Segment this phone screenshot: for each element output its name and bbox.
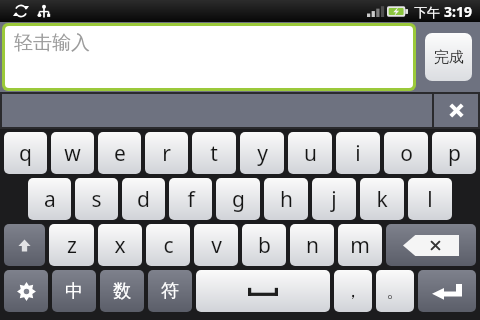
button[interactable]: Backspace — [386, 224, 476, 266]
button[interactable]: Shift — [4, 224, 45, 266]
staticText: g — [232, 185, 245, 214]
staticText: c — [163, 231, 174, 260]
button[interactable]: a — [28, 178, 71, 220]
staticText: 下午 — [414, 4, 440, 20]
staticText: 符 — [161, 280, 179, 303]
button[interactable]: ， — [334, 270, 372, 312]
staticText: t — [210, 139, 218, 168]
staticText: v — [211, 231, 222, 260]
button[interactable]: k — [360, 178, 404, 220]
button[interactable]: b — [242, 224, 286, 266]
staticText: x — [114, 231, 126, 260]
button[interactable]: Settings — [4, 270, 48, 312]
button[interactable]: Enter — [418, 270, 476, 312]
button[interactable]: u — [288, 132, 332, 174]
staticText: n — [306, 231, 319, 260]
button[interactable]: h — [264, 178, 308, 220]
button[interactable]: q — [4, 132, 47, 174]
staticText: e — [114, 139, 126, 168]
button[interactable]: d — [122, 178, 165, 220]
staticText: i — [355, 139, 361, 168]
staticText: q — [19, 139, 32, 168]
button[interactable]: o — [384, 132, 428, 174]
staticText: k — [376, 185, 388, 214]
button[interactable]: 轻击输入 — [5, 26, 413, 88]
staticText: p — [448, 139, 461, 168]
button[interactable]: p — [432, 132, 476, 174]
button[interactable]: Space — [196, 270, 330, 312]
button[interactable]: v — [194, 224, 238, 266]
button[interactable]: 完成 — [425, 33, 472, 81]
button[interactable]: n — [290, 224, 334, 266]
staticText: a — [44, 185, 56, 214]
staticText: j — [331, 185, 337, 214]
button[interactable]: z — [49, 224, 94, 266]
button[interactable]: 中 — [52, 270, 96, 312]
button[interactable]: y — [240, 132, 284, 174]
button[interactable]: s — [75, 178, 118, 220]
button[interactable]: l — [408, 178, 452, 220]
button[interactable]: i — [336, 132, 380, 174]
button[interactable]: m — [338, 224, 382, 266]
button[interactable]: f — [169, 178, 212, 220]
staticText: u — [304, 139, 317, 168]
staticText: l — [427, 185, 433, 214]
button[interactable]: 符 — [148, 270, 192, 312]
staticText: r — [162, 139, 171, 168]
staticText: y — [257, 139, 268, 168]
button[interactable]: 。 — [376, 270, 414, 312]
staticText: 3:19 — [444, 2, 472, 21]
staticText: f — [187, 185, 195, 214]
staticText: w — [64, 139, 81, 168]
button[interactable]: w — [51, 132, 94, 174]
button[interactable]: Close keyboard — [434, 94, 478, 127]
button[interactable]: g — [216, 178, 260, 220]
staticText: 。 — [386, 280, 404, 303]
staticText: b — [258, 231, 271, 260]
staticText: o — [400, 139, 413, 168]
button[interactable]: x — [98, 224, 142, 266]
button[interactable]: c — [146, 224, 190, 266]
staticText: 完成 — [434, 48, 464, 67]
button[interactable]: t — [192, 132, 236, 174]
button[interactable]: r — [145, 132, 188, 174]
staticText: 中 — [65, 280, 83, 303]
button[interactable]: 数 — [100, 270, 144, 312]
staticText: 数 — [113, 280, 131, 303]
button[interactable]: e — [98, 132, 141, 174]
staticText: z — [67, 231, 77, 260]
staticText: 轻击输入 — [14, 31, 90, 55]
staticText: m — [350, 231, 370, 260]
staticText: d — [137, 185, 150, 214]
button[interactable]: j — [312, 178, 356, 220]
staticText: h — [280, 185, 293, 214]
staticText: s — [91, 185, 102, 214]
staticText: ， — [344, 280, 362, 303]
